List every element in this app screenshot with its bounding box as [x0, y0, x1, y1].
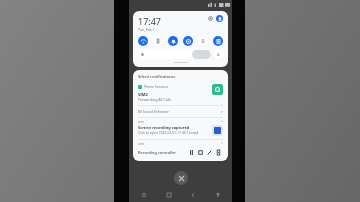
staticText: ^: [221, 142, 223, 146]
button[interactable]: Back: [188, 190, 197, 199]
button[interactable]: Recents: [164, 190, 173, 199]
staticText: Forwarding All Calls: [138, 97, 172, 102]
staticText: SIM2: [138, 92, 148, 97]
button[interactable]: Mi Sound Enhancer: [138, 109, 223, 114]
staticText: scrn: [138, 142, 221, 146]
staticText: ^: [221, 120, 223, 124]
button[interactable]: Stop: [196, 148, 205, 157]
button[interactable]: Quick setting: [138, 36, 148, 46]
staticText: Tue, Feb 1: [138, 27, 155, 32]
staticText: A: [217, 52, 220, 57]
staticText: Screen recording captured: [138, 125, 190, 130]
staticText: scrn: [138, 120, 221, 124]
staticText: Mi Sound Enhancer: [138, 109, 221, 114]
button[interactable]: Quick setting: [198, 36, 208, 46]
button[interactable]: Menu: [139, 190, 148, 199]
staticText: v: [221, 110, 223, 114]
button[interactable]: User: [216, 15, 223, 22]
button[interactable]: Draw: [205, 148, 214, 157]
button[interactable]: Quick setting: [168, 36, 178, 46]
staticText: Recording controller: [138, 150, 187, 155]
button[interactable]: Camera: [214, 148, 223, 157]
staticText: Silent notifications: [138, 74, 176, 80]
staticText: 17:47: [138, 15, 162, 27]
button[interactable]: Screen recording captured: [138, 125, 223, 136]
button[interactable]: [138, 50, 211, 59]
button[interactable]: Pause: [187, 148, 196, 157]
button[interactable]: Phone Services: [138, 84, 223, 102]
button[interactable]: Share: [213, 190, 222, 199]
button[interactable]: Quick setting: [183, 36, 193, 46]
button[interactable]: Quick setting: [153, 36, 163, 46]
staticText: Click to open 2022-02-01-17-45-14.mp4: [138, 130, 199, 134]
staticText: Phone Services: [144, 84, 169, 89]
button[interactable]: Settings: [207, 15, 214, 22]
button[interactable]: Close: [174, 171, 188, 185]
button[interactable]: Quick setting: [213, 36, 223, 46]
button[interactable]: Auto brightness: [214, 50, 223, 59]
